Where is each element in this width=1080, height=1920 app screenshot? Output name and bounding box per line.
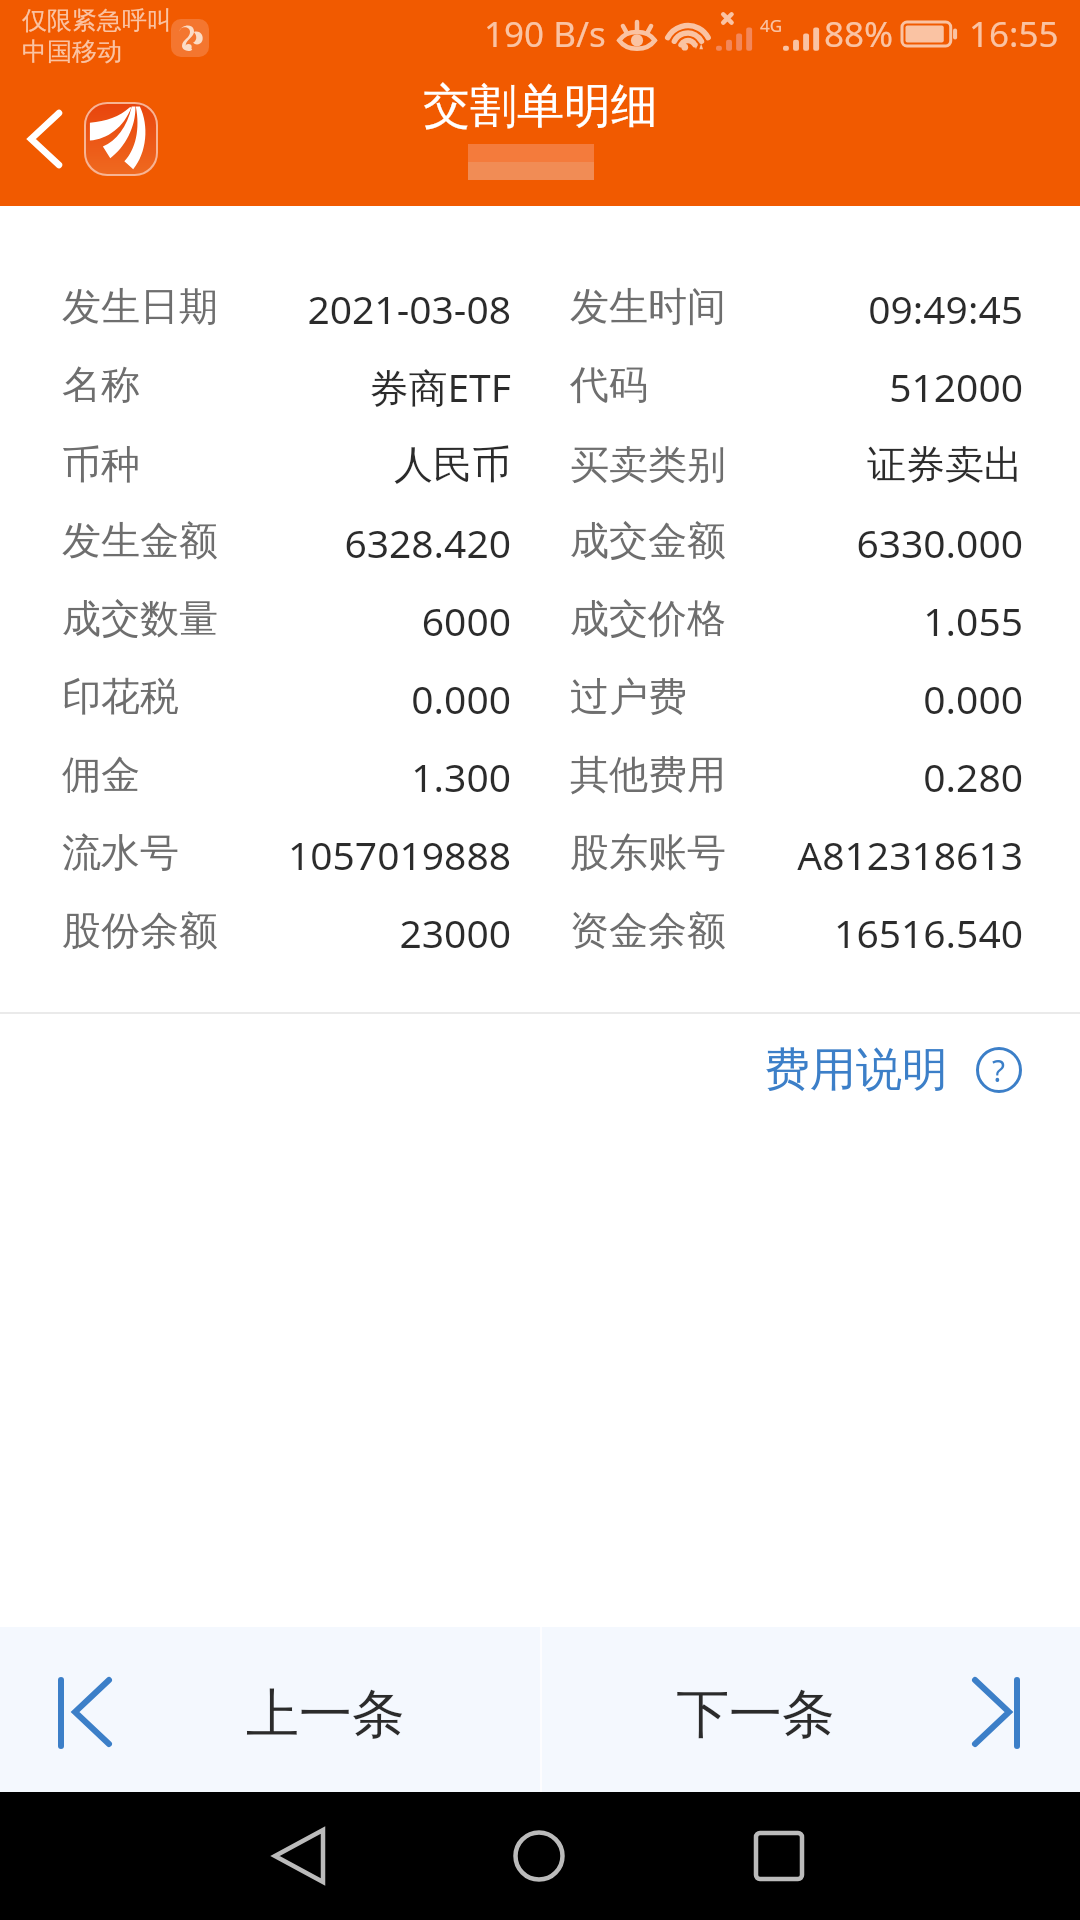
staticText: 下一条 [676, 1681, 835, 1748]
staticText: 股东账号 [570, 828, 726, 877]
staticText: 其他费用 [570, 750, 726, 799]
staticText: 印花税 [62, 672, 179, 721]
staticText: 名称 [62, 360, 140, 409]
button[interactable]: App logo [84, 102, 158, 176]
staticText: 股份余额 [62, 906, 218, 955]
staticText: 发生金额 [62, 516, 218, 565]
staticText: 佣金 [62, 750, 140, 799]
button[interactable]: Back [239, 1796, 359, 1916]
staticText: 6328.420 [62, 516, 511, 569]
staticText: 4G [760, 14, 783, 37]
staticText: 2021-03-08 [62, 282, 511, 335]
button[interactable]: 下一条 [540, 1627, 1080, 1792]
staticText: 190 B/s [484, 10, 606, 58]
button[interactable]: Home [479, 1796, 599, 1916]
staticText: 流水号 [62, 828, 179, 877]
staticText: 过户费 [570, 672, 687, 721]
staticText: 发生日期 [62, 282, 218, 331]
staticText: 买卖类别 [570, 440, 726, 489]
staticText: 成交数量 [62, 594, 218, 643]
staticText: 6330.000 [570, 516, 1023, 569]
button[interactable]: Recents [719, 1796, 839, 1916]
staticText: 币种 [62, 440, 140, 489]
staticText: A812318613 [570, 828, 1023, 881]
staticText: 0.000 [62, 672, 511, 725]
staticText: 券商ETF [62, 360, 511, 413]
button[interactable]: 上一条 [0, 1627, 540, 1792]
staticText: 16516.540 [570, 906, 1023, 959]
staticText: 09:49:45 [570, 282, 1023, 335]
staticText: 0.280 [570, 750, 1023, 803]
staticText: 成交金额 [570, 516, 726, 565]
button[interactable]: 费用说明 [764, 1041, 1080, 1099]
staticText: 费用说明 [764, 1041, 948, 1099]
button[interactable]: Back [0, 94, 92, 186]
staticText: 6000 [62, 594, 511, 647]
staticText: 1.055 [570, 594, 1023, 647]
staticText: 中国移动 [22, 36, 122, 67]
staticText: 1.300 [62, 750, 511, 803]
staticText: 23000 [62, 906, 511, 959]
staticText: ? [992, 1050, 1006, 1091]
staticText: 交割单明细 [423, 77, 658, 136]
staticText: 证券卖出 [570, 440, 1023, 489]
staticText: 512000 [570, 360, 1023, 413]
staticText: 人民币 [62, 440, 511, 489]
staticText: 代码 [570, 360, 648, 409]
staticText: 发生时间 [570, 282, 726, 331]
staticText: 16:55 [969, 10, 1059, 58]
staticText: 资金余额 [570, 906, 726, 955]
staticText: 88% [824, 10, 894, 58]
staticText: 1057019888 [62, 828, 511, 881]
staticText: 仅限紧急呼叫 [22, 5, 172, 36]
staticText: 成交价格 [570, 594, 726, 643]
staticText: 上一条 [246, 1681, 405, 1748]
staticText: 0.000 [570, 672, 1023, 725]
